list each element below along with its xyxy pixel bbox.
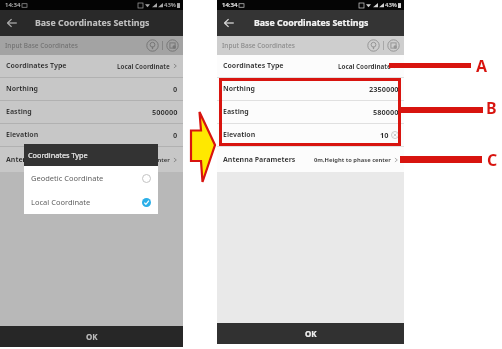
button[interactable]: Locate (367, 39, 380, 52)
button[interactable]: Elevation (217, 124, 404, 146)
staticText: B (486, 97, 497, 119)
button[interactable]: OK (217, 323, 404, 344)
staticText: Elevation (223, 130, 256, 140)
staticText: 10 (380, 130, 389, 140)
staticText: Local Coordinate (338, 62, 391, 71)
staticText: Antenna Parameters (223, 155, 296, 165)
staticText: Base Coordinates Settings (254, 17, 369, 29)
button[interactable]: Northing (0, 78, 183, 100)
staticText: 0m,Height to phase center (314, 156, 391, 164)
button[interactable]: Local Coordinate (24, 190, 158, 214)
staticText: Coordinates Type (6, 61, 67, 71)
button[interactable]: Coordinates Type (0, 55, 183, 77)
staticText: 43% (164, 1, 176, 9)
button[interactable]: Settings (387, 39, 400, 52)
staticText: Geodetic Coordinate (31, 173, 104, 183)
staticText: 14:34 (5, 1, 21, 9)
staticText: Elevation (6, 130, 39, 140)
staticText: OK (305, 328, 317, 339)
button[interactable]: OK (0, 326, 183, 347)
staticText: Coordinates Type (223, 61, 284, 71)
staticText: Input Base Coordinates (222, 41, 295, 50)
button[interactable]: Elevation (0, 124, 183, 146)
button[interactable]: Back (5, 16, 19, 30)
staticText: Northing (223, 84, 255, 94)
staticText: A (476, 55, 488, 77)
button[interactable]: Antenna Parameters (0, 147, 183, 172)
staticText: Local Coordinate (117, 62, 170, 71)
staticText: 0 (173, 130, 178, 140)
other: Clear (391, 131, 399, 139)
staticText: 0 (173, 84, 178, 94)
staticText: Input Base Coordinates (5, 41, 78, 50)
button[interactable]: Locate (146, 39, 159, 52)
button[interactable]: Easting (217, 101, 404, 123)
staticText: C (487, 149, 498, 171)
staticText: 2350000 (369, 84, 399, 94)
button[interactable]: Back (222, 16, 236, 30)
staticText: 43% (385, 1, 397, 9)
button[interactable]: Antenna Parameters (217, 147, 404, 172)
staticText: Easting (6, 107, 32, 117)
staticText: Coordinates Type (28, 150, 88, 160)
staticText: Local Coordinate (31, 197, 91, 207)
staticText: 580000 (373, 107, 399, 117)
staticText: 14:34 (222, 1, 238, 9)
button[interactable]: Geodetic Coordinate (24, 166, 158, 190)
button[interactable]: Northing (217, 78, 404, 100)
staticText: 500000 (152, 107, 178, 117)
staticText: Base Coordinates Settings (35, 17, 150, 29)
button[interactable]: Coordinates Type (217, 55, 404, 77)
staticText: OK (86, 331, 98, 342)
staticText: Northing (6, 84, 38, 94)
staticText: Antenna Parameters (6, 155, 79, 165)
button[interactable]: Settings (166, 39, 179, 52)
button[interactable]: Easting (0, 101, 183, 123)
staticText: 0m,Height to phase center (93, 156, 170, 164)
staticText: Easting (223, 107, 249, 117)
